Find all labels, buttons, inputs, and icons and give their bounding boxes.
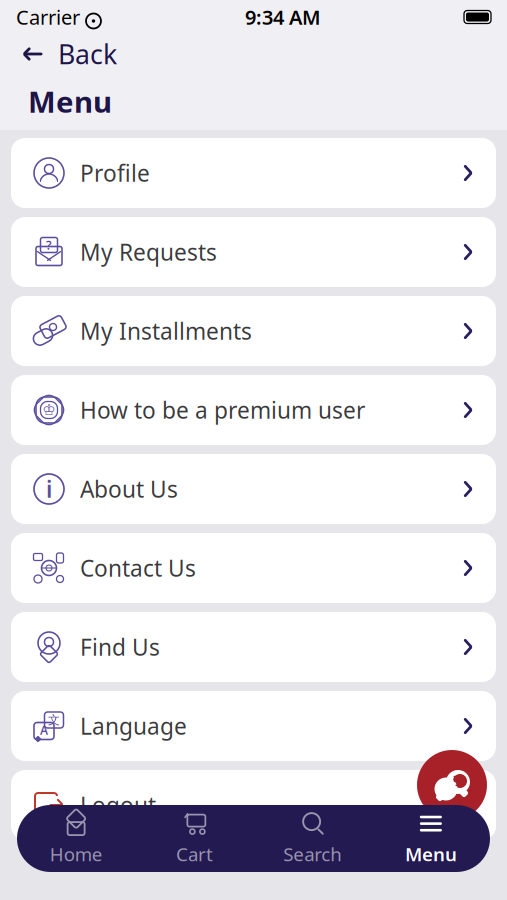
staticText: Profile (80, 158, 150, 188)
staticText: Menu (405, 842, 457, 866)
button[interactable]: Contact Us (11, 533, 496, 603)
button[interactable]: Home (17, 805, 135, 871)
button[interactable]: Find Us (11, 612, 496, 682)
button[interactable]: i (11, 454, 496, 524)
button[interactable]: My Installments (11, 296, 496, 366)
staticText: Back (58, 36, 117, 72)
staticText: Contact Us (80, 553, 196, 583)
button[interactable]: ♔ (11, 375, 496, 445)
staticText: Language (80, 711, 187, 741)
staticText: How to be a premium user (80, 395, 365, 425)
button[interactable]: Cart (135, 805, 253, 871)
button[interactable]: Search (253, 805, 372, 871)
staticText: Carrier (16, 4, 80, 30)
staticText: Find Us (80, 632, 160, 662)
staticText: A (40, 722, 48, 738)
staticText: Cart (176, 842, 213, 866)
staticText: My Requests (80, 237, 217, 267)
staticText: ♔ (42, 402, 55, 418)
staticText: Menu (28, 82, 112, 121)
staticText: 文 (48, 713, 60, 727)
button[interactable]: ? (11, 217, 496, 287)
button[interactable]: Logout (11, 770, 496, 840)
staticText: 9:34 AM (245, 4, 321, 30)
staticText: Search (283, 842, 342, 866)
staticText: i (46, 474, 52, 504)
staticText: Home (50, 842, 103, 866)
button[interactable]: Chat support (417, 750, 487, 820)
button[interactable]: Back (0, 34, 507, 74)
button[interactable]: Profile (11, 138, 496, 208)
staticText: My Installments (80, 316, 252, 346)
button[interactable]: 文 (11, 691, 496, 761)
button[interactable]: Menu (372, 805, 490, 871)
staticText: Logout (80, 790, 156, 820)
staticText: ? (46, 237, 52, 253)
staticText: About Us (80, 474, 178, 504)
